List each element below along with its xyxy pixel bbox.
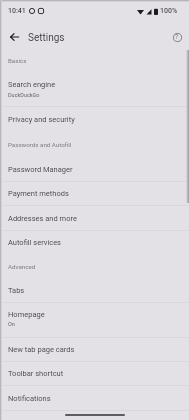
button[interactable]: Toolbar shortcut	[0, 362, 189, 385]
staticText: Privacy and security	[8, 115, 75, 124]
button[interactable]: Addresses and more	[0, 206, 189, 230]
button[interactable]: Password Manager	[0, 158, 189, 181]
button[interactable]: New tab page cards	[0, 338, 189, 361]
staticText: Addresses and more	[8, 214, 77, 223]
staticText: Tabs	[8, 286, 25, 295]
button[interactable]: Privacy and security	[0, 107, 189, 131]
staticText: Homepage	[8, 310, 45, 319]
staticText: Basics	[8, 57, 27, 64]
staticText: DuckDuckGo	[8, 92, 40, 98]
button[interactable]: Notifications	[0, 386, 189, 410]
staticText: Advanced	[8, 263, 36, 270]
button[interactable]: Back	[3, 26, 25, 48]
staticText: On	[8, 321, 15, 327]
button[interactable]: Help	[168, 28, 186, 46]
button[interactable]: Homepage	[0, 303, 189, 337]
staticText: Toolbar shortcut	[8, 369, 64, 378]
staticText: Settings	[28, 32, 65, 44]
staticText: Payment methods	[8, 189, 69, 198]
staticText: ?	[175, 33, 179, 41]
button[interactable]: Tabs	[0, 278, 189, 302]
staticText: Autofill services	[8, 238, 61, 247]
button[interactable]: Payment methods	[0, 182, 189, 205]
staticText: Password Manager	[8, 165, 73, 174]
button[interactable]: Search engine	[0, 70, 189, 106]
staticText: 10:41	[8, 7, 26, 15]
staticText: New tab page cards	[8, 345, 75, 354]
staticText: Notifications	[8, 394, 51, 403]
button[interactable]: Autofill services	[0, 231, 189, 254]
staticText: Search engine	[8, 80, 56, 89]
staticText: 100%	[160, 7, 178, 15]
staticText: Passwords and Autofill	[8, 141, 72, 148]
